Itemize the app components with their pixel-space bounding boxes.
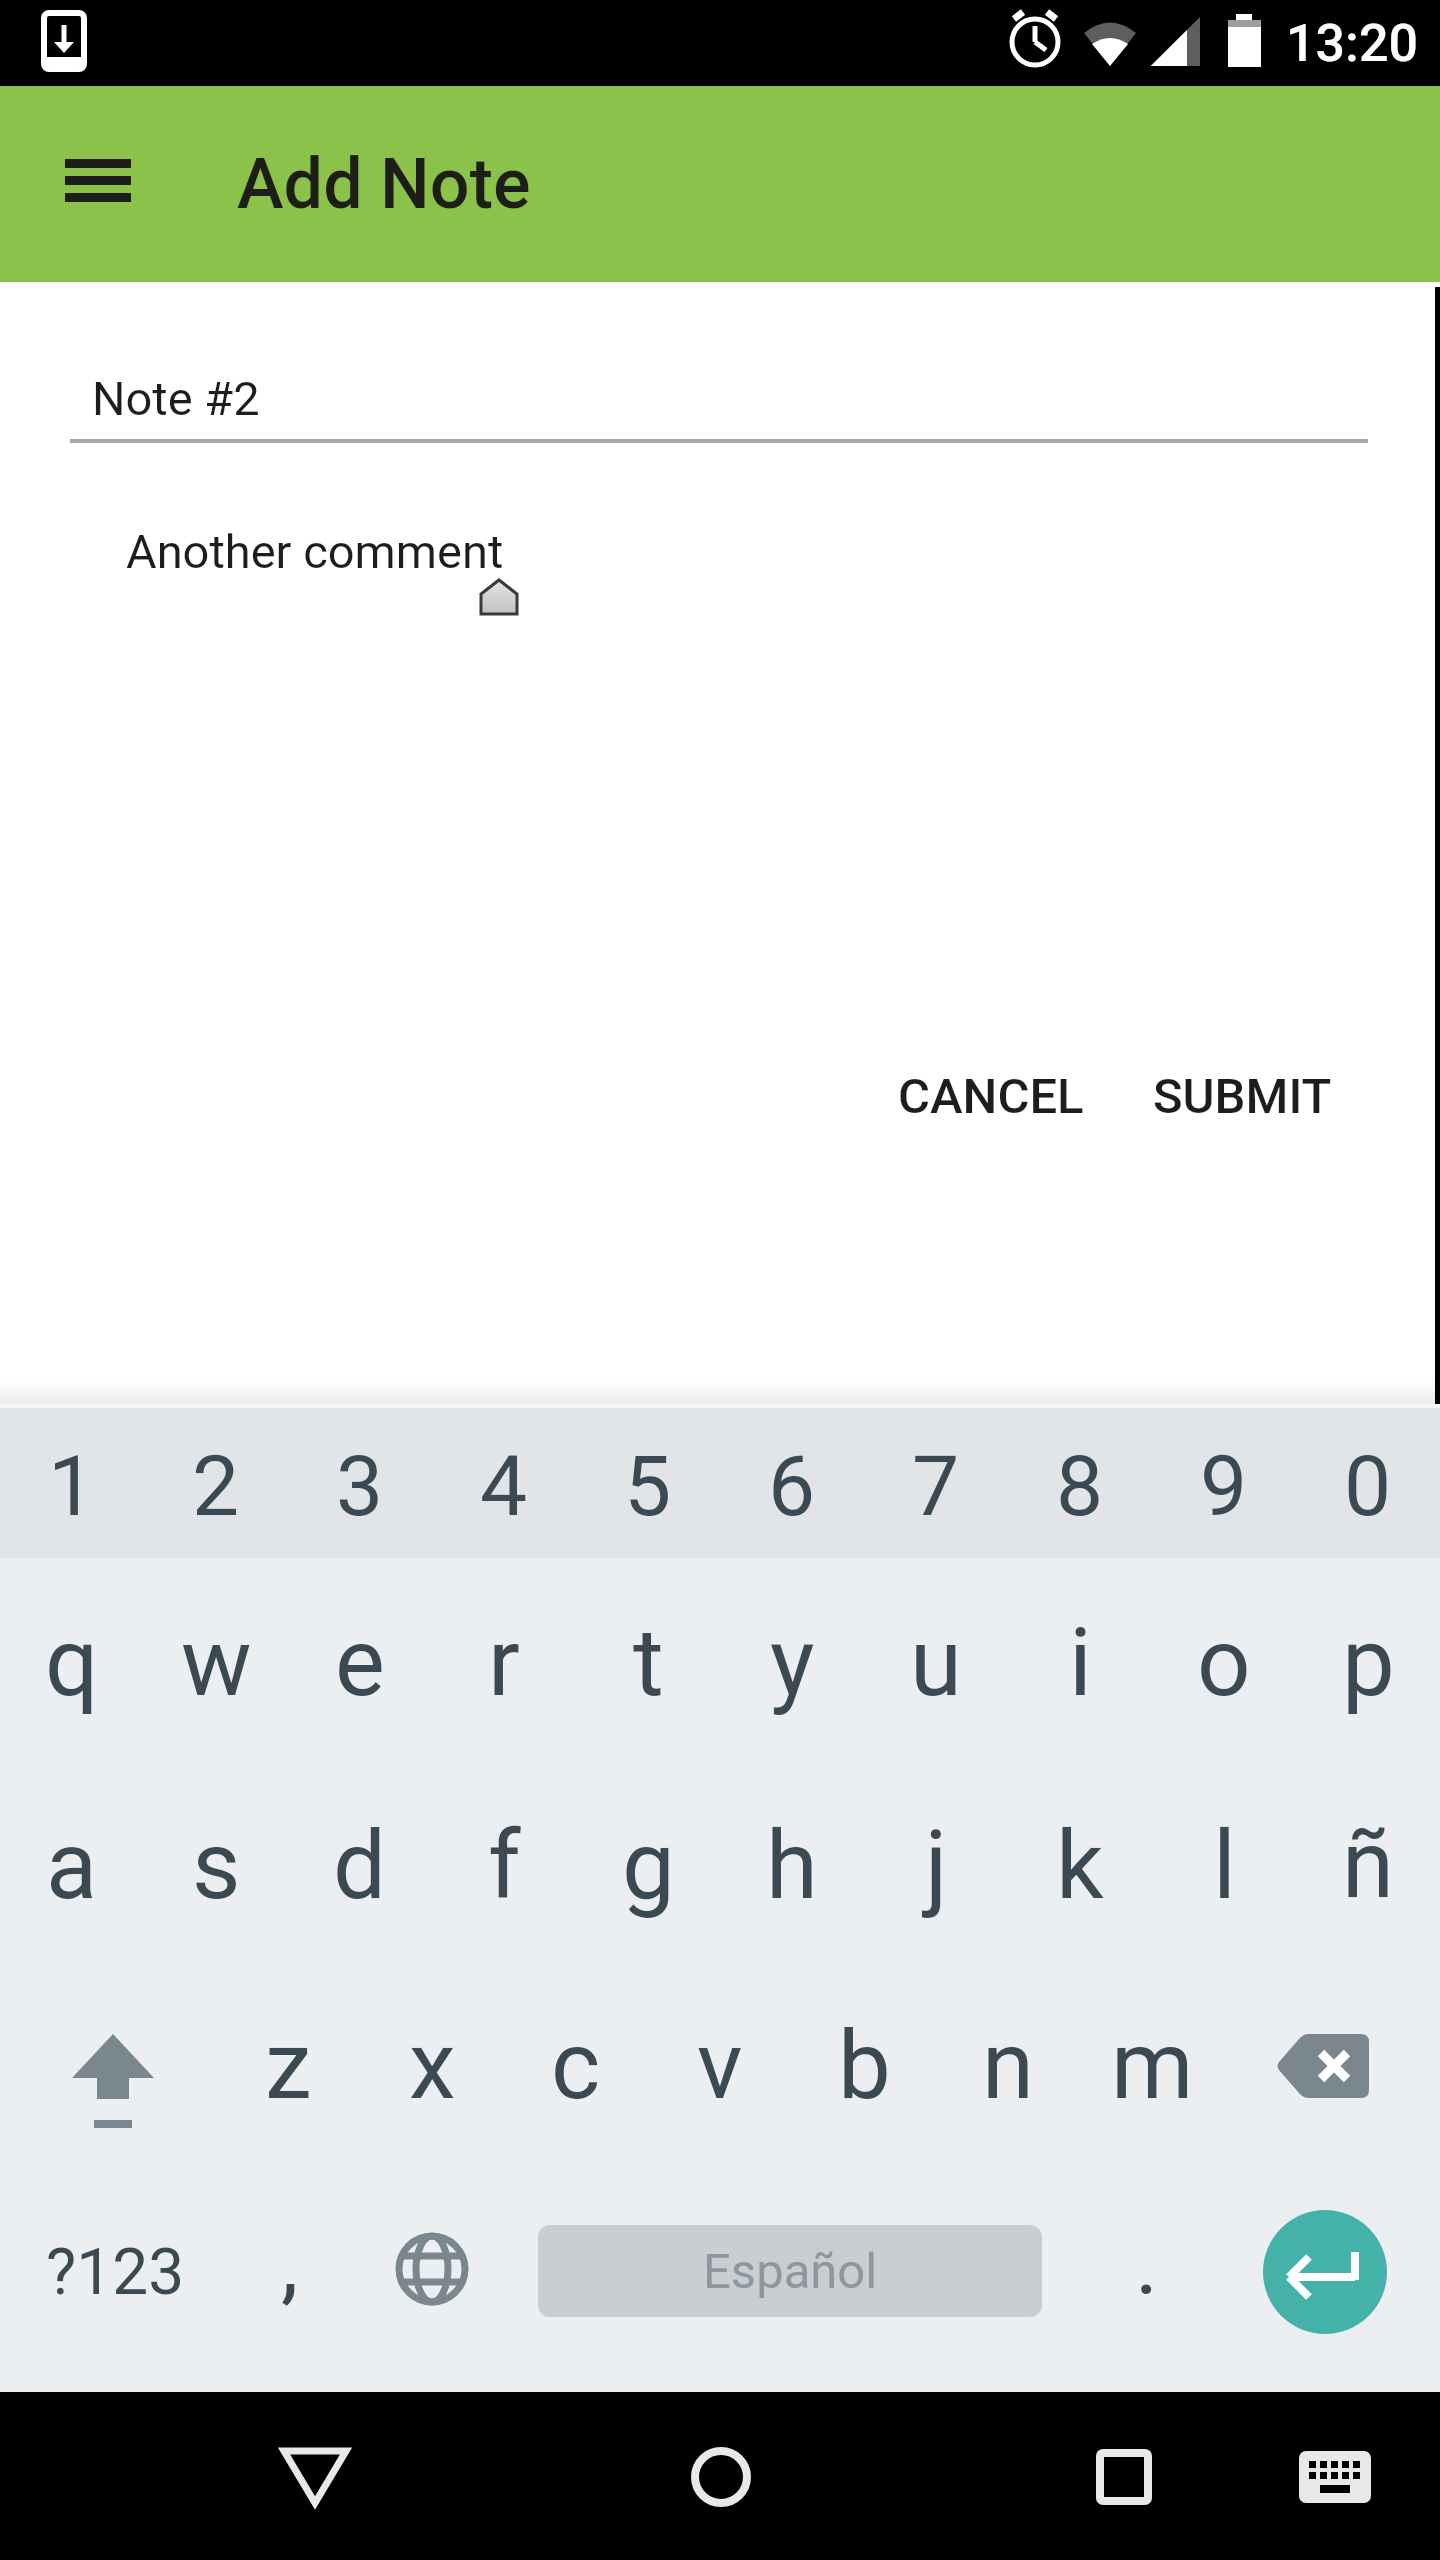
staticText: m xyxy=(1111,2011,1194,2121)
button[interactable] xyxy=(1044,2402,1204,2552)
button[interactable]: o xyxy=(1152,1563,1296,1763)
staticText: 8 xyxy=(1056,1437,1104,1535)
button[interactable]: 6 xyxy=(720,1413,864,1559)
button[interactable]: 5 xyxy=(576,1413,720,1559)
button[interactable]: v xyxy=(648,1966,792,2166)
staticText: v xyxy=(697,2011,743,2121)
staticText: 5 xyxy=(624,1437,672,1535)
button[interactable]: ñ xyxy=(1296,1766,1440,1966)
staticText: u xyxy=(910,1608,962,1718)
button[interactable]: 1 xyxy=(0,1413,144,1559)
button[interactable]: b xyxy=(792,1966,936,2166)
button[interactable]: x xyxy=(360,1966,504,2166)
button[interactable]: ?123 xyxy=(10,2167,220,2377)
button[interactable]: Español xyxy=(538,2225,1042,2317)
button[interactable] xyxy=(23,1981,203,2181)
button[interactable] xyxy=(641,2402,801,2552)
staticText: h xyxy=(766,1811,818,1921)
staticText: 2 xyxy=(192,1437,240,1535)
staticText: p xyxy=(1342,1608,1395,1718)
staticText: b xyxy=(838,2011,891,2121)
button[interactable]: a xyxy=(0,1766,144,1966)
staticText: f xyxy=(488,1811,521,1921)
staticText: o xyxy=(1197,1608,1251,1718)
button[interactable]: c xyxy=(504,1966,648,2166)
staticText: 0 xyxy=(1344,1437,1392,1535)
staticText: s xyxy=(192,1811,241,1921)
button[interactable]: 4 xyxy=(432,1413,576,1559)
button[interactable]: t xyxy=(576,1563,720,1763)
staticText: x xyxy=(409,2011,456,2121)
staticText: a xyxy=(46,1811,98,1921)
staticText: z xyxy=(265,2011,312,2121)
staticText: ?123 xyxy=(46,2235,185,2310)
button[interactable]: , xyxy=(220,2167,360,2357)
staticText: SUBMIT xyxy=(1153,1068,1332,1125)
button[interactable]: r xyxy=(432,1563,576,1763)
staticText: ñ xyxy=(1342,1811,1394,1921)
button[interactable]: 7 xyxy=(864,1413,1008,1559)
staticText: g xyxy=(622,1811,675,1921)
button[interactable] xyxy=(235,2402,395,2552)
button[interactable]: i xyxy=(1008,1563,1152,1763)
button[interactable]: 9 xyxy=(1152,1413,1296,1559)
staticText: e xyxy=(335,1608,385,1718)
button[interactable]: j xyxy=(864,1766,1008,1966)
staticText: 9 xyxy=(1200,1437,1248,1535)
staticText: , xyxy=(281,2211,299,2314)
button[interactable]: s xyxy=(144,1766,288,1966)
button[interactable]: g xyxy=(576,1766,720,1966)
button[interactable] xyxy=(352,2189,512,2349)
staticText: CANCEL xyxy=(898,1068,1084,1125)
button[interactable]: d xyxy=(288,1766,432,1966)
button[interactable]: z xyxy=(216,1966,360,2166)
button[interactable]: 0 xyxy=(1296,1413,1440,1559)
staticText: j xyxy=(925,1811,948,1921)
button[interactable]: 3 xyxy=(288,1413,432,1559)
button[interactable]: p xyxy=(1296,1563,1440,1763)
button[interactable]: f xyxy=(432,1766,576,1966)
staticText: Español xyxy=(703,2243,878,2300)
staticText: 6 xyxy=(768,1437,816,1535)
staticText: Note #2 xyxy=(92,371,260,426)
button[interactable] xyxy=(1237,1972,1417,2172)
staticText: y xyxy=(770,1608,815,1718)
button[interactable]: 2 xyxy=(144,1413,288,1559)
button[interactable]: SUBMIT xyxy=(1122,1046,1362,1146)
staticText: d xyxy=(333,1811,387,1921)
staticText: n xyxy=(982,2011,1034,2121)
button[interactable]: l xyxy=(1152,1766,1296,1966)
button[interactable]: . xyxy=(1077,2167,1217,2357)
button[interactable] xyxy=(1265,2402,1405,2552)
button[interactable]: k xyxy=(1008,1766,1152,1966)
button[interactable]: u xyxy=(864,1563,1008,1763)
staticText: . xyxy=(1135,2211,1159,2314)
staticText: w xyxy=(181,1608,252,1718)
staticText: t xyxy=(633,1608,664,1718)
button[interactable] xyxy=(1263,2210,1387,2334)
button[interactable]: n xyxy=(936,1966,1080,2166)
button[interactable]: 8 xyxy=(1008,1413,1152,1559)
staticText: 7 xyxy=(912,1437,960,1535)
staticText: q xyxy=(45,1608,99,1718)
staticText: r xyxy=(488,1608,520,1718)
button[interactable]: h xyxy=(720,1766,864,1966)
staticText: 4 xyxy=(480,1437,528,1535)
button[interactable]: q xyxy=(0,1563,144,1763)
staticText: l xyxy=(1213,1811,1236,1921)
staticText: 3 xyxy=(336,1437,384,1535)
button[interactable]: e xyxy=(288,1563,432,1763)
staticText: 1 xyxy=(48,1437,96,1535)
button[interactable]: m xyxy=(1080,1966,1224,2166)
button[interactable]: y xyxy=(720,1563,864,1763)
staticText: Another comment xyxy=(126,524,504,579)
staticText: k xyxy=(1056,1811,1104,1921)
staticText: i xyxy=(1069,1608,1092,1718)
staticText: Add Note xyxy=(237,143,531,225)
button[interactable]: w xyxy=(144,1563,288,1763)
staticText: 13:20 xyxy=(1286,13,1419,74)
button[interactable] xyxy=(49,144,147,224)
button[interactable]: CANCEL xyxy=(860,1046,1122,1146)
staticText: c xyxy=(551,2011,601,2121)
